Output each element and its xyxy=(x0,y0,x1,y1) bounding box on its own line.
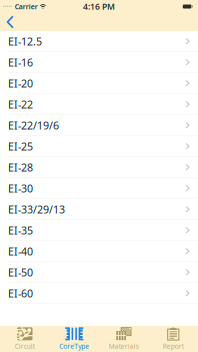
button[interactable]: EI-60 xyxy=(0,283,198,304)
staticText: Carrier xyxy=(15,2,38,11)
staticText: EI-60 xyxy=(8,286,33,300)
staticText: ••••• xyxy=(2,3,12,10)
button[interactable]: Back xyxy=(0,13,22,31)
staticText: Materials xyxy=(109,342,139,351)
staticText: CoreType xyxy=(59,342,89,351)
staticText: EI-22 xyxy=(8,97,33,111)
staticText: EI-22/19/6 xyxy=(8,118,59,132)
staticText: EI-28 xyxy=(8,160,33,174)
staticText: Circuit xyxy=(15,342,35,351)
staticText: EI-35 xyxy=(8,223,33,237)
button[interactable]: EI-50 xyxy=(0,262,198,283)
button[interactable]: EI-30 xyxy=(0,178,198,199)
button[interactable]: EI-25 xyxy=(0,136,198,157)
staticText: EI-40 xyxy=(8,244,33,258)
button[interactable]: CoreType xyxy=(49,326,99,352)
staticText: EI-30 xyxy=(8,181,33,195)
button[interactable]: EI-22/19/6 xyxy=(0,115,198,136)
button[interactable]: EI-20 xyxy=(0,73,198,94)
button[interactable]: EI-28 xyxy=(0,157,198,178)
button[interactable]: EI-35 xyxy=(0,220,198,241)
button[interactable]: EI-33/29/13 xyxy=(0,199,198,220)
staticText: EI-33/29/13 xyxy=(8,202,65,216)
staticText: EI-12.5 xyxy=(8,34,42,48)
staticText: EI-20 xyxy=(8,76,33,90)
staticText: Report xyxy=(163,342,184,351)
button[interactable]: Report xyxy=(148,326,198,352)
staticText: EI-25 xyxy=(8,139,33,153)
button[interactable]: EI-40 xyxy=(0,241,198,262)
button[interactable]: EI-16 xyxy=(0,52,198,73)
button[interactable]: EI-22 xyxy=(0,94,198,115)
staticText: 4:16 PM xyxy=(83,1,115,12)
staticText: EI-16 xyxy=(8,55,33,69)
button[interactable]: Materials xyxy=(99,326,148,352)
staticText: EI-50 xyxy=(8,265,33,279)
button[interactable]: Circuit xyxy=(0,326,49,352)
button[interactable]: EI-12.5 xyxy=(0,31,198,52)
